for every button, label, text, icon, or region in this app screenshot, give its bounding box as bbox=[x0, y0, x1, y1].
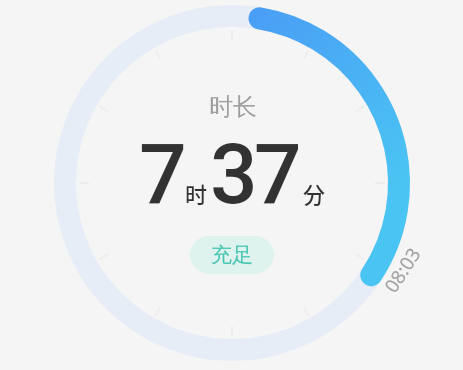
staticText: 充足 bbox=[211, 242, 253, 268]
staticText: 08:03 bbox=[378, 242, 427, 298]
button[interactable]: Sleep duration 7 hours 37 minutes bbox=[54, 5, 410, 361]
button[interactable]: 充足 bbox=[190, 236, 274, 274]
